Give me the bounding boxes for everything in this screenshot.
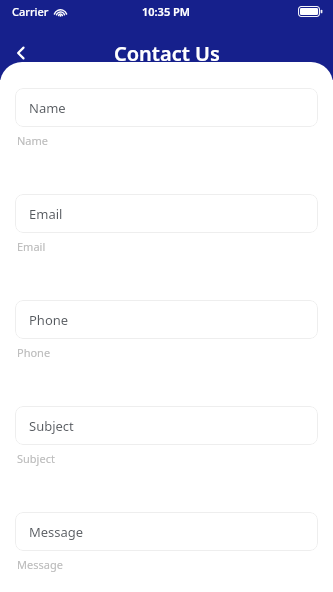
- staticText: Email: [17, 239, 46, 254]
- staticText: Message: [17, 557, 63, 572]
- button[interactable]: Subject: [15, 406, 318, 445]
- staticText: 10:35 PM: [142, 4, 191, 19]
- staticText: Phone: [17, 345, 51, 360]
- staticText: Name: [29, 99, 66, 117]
- staticText: Subject: [29, 417, 74, 435]
- staticText: Email: [29, 205, 63, 223]
- staticText: Message: [29, 523, 84, 541]
- staticText: Carrier: [12, 4, 49, 19]
- button[interactable]: Back: [6, 38, 36, 68]
- staticText: Phone: [29, 311, 69, 329]
- button[interactable]: Name: [15, 88, 318, 127]
- button[interactable]: Message: [15, 512, 318, 551]
- staticText: Contact Us: [114, 40, 220, 67]
- staticText: Subject: [17, 451, 55, 466]
- staticText: Name: [17, 133, 49, 148]
- button[interactable]: Email: [15, 194, 318, 233]
- button[interactable]: Phone: [15, 300, 318, 339]
